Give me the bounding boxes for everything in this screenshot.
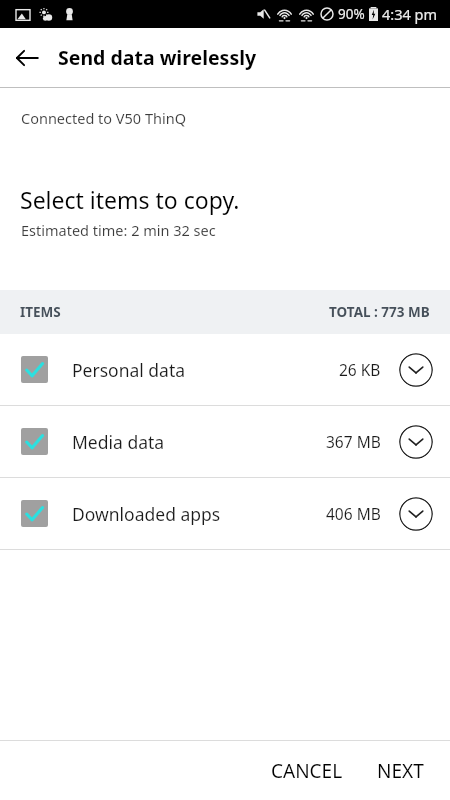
button[interactable]: Expand: [399, 497, 433, 531]
staticText: Media data: [72, 430, 165, 454]
staticText: Personal data: [72, 358, 186, 382]
button[interactable]: NEXT: [365, 748, 436, 794]
staticText: Connected to V50 ThinQ: [21, 108, 186, 128]
button[interactable]: Selected: [0, 406, 450, 477]
button[interactable]: Selected: [21, 500, 48, 527]
button[interactable]: CANCEL: [259, 748, 355, 794]
staticText: Send data wirelessly: [58, 44, 257, 71]
button[interactable]: Selected: [0, 478, 450, 549]
staticText: 4:34 pm: [382, 4, 438, 24]
staticText: TOTAL : 773 MB: [329, 303, 430, 321]
staticText: 406 MB: [326, 503, 381, 524]
staticText: Select items to copy.: [20, 184, 240, 215]
button[interactable]: Selected: [0, 334, 450, 405]
staticText: 26 KB: [339, 359, 381, 380]
button[interactable]: Back: [9, 40, 45, 76]
button[interactable]: Expand: [399, 425, 433, 459]
staticText: Estimated time: 2 min 32 sec: [21, 220, 216, 240]
staticText: ITEMS: [20, 303, 61, 321]
button[interactable]: Expand: [399, 353, 433, 387]
button[interactable]: Selected: [21, 356, 48, 383]
button[interactable]: Selected: [21, 428, 48, 455]
staticText: 90%: [338, 5, 365, 23]
staticText: Downloaded apps: [72, 502, 221, 526]
staticText: NEXT: [377, 758, 424, 784]
staticText: 367 MB: [326, 431, 381, 452]
staticText: CANCEL: [271, 758, 343, 784]
